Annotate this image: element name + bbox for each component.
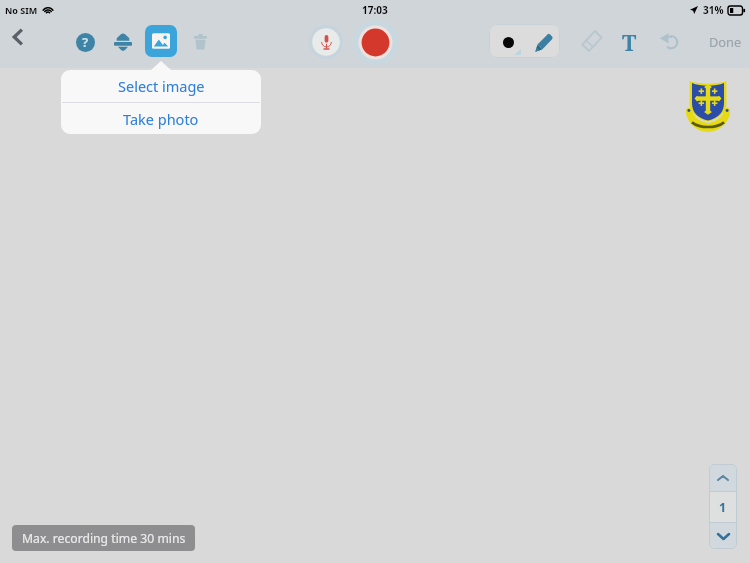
button[interactable]: Take photo — [61, 103, 261, 134]
button[interactable]: Select image — [61, 70, 261, 102]
staticText: ? — [82, 33, 89, 51]
button[interactable]: Eraser — [578, 27, 606, 55]
staticText: Max. recording time 30 mins — [22, 530, 186, 547]
button[interactable]: Microphone — [309, 25, 343, 59]
staticText: 1 — [719, 499, 727, 516]
button[interactable]: Text tool — [615, 26, 644, 55]
button[interactable]: Undo — [654, 27, 682, 55]
staticText: 31% — [703, 3, 724, 17]
button[interactable]: Pen options — [489, 24, 560, 58]
button[interactable]: Back — [4, 22, 34, 52]
staticText: Done — [709, 33, 742, 50]
button[interactable]: Previous page — [709, 464, 737, 491]
staticText: 17:03 — [362, 3, 388, 17]
button[interactable]: Help — [71, 28, 99, 56]
button[interactable]: Record — [353, 20, 398, 65]
button[interactable]: Delete — [185, 28, 213, 56]
button[interactable]: Done — [702, 26, 748, 56]
button[interactable]: Max. recording time 30 mins — [12, 525, 195, 551]
button[interactable]: Next page — [709, 523, 737, 549]
button[interactable]: Insert image — [145, 25, 177, 57]
staticText: No SIM — [5, 4, 38, 16]
staticText: T — [622, 27, 637, 56]
staticText: Take photo — [123, 109, 199, 129]
staticText: Select image — [118, 76, 205, 96]
button[interactable]: Badge — [109, 27, 139, 57]
